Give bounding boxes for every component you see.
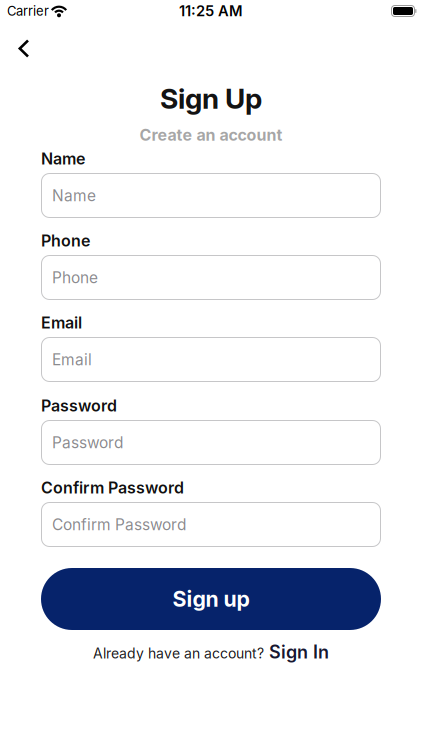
staticText: Name bbox=[52, 186, 96, 205]
staticText: Sign Up bbox=[160, 82, 262, 115]
button[interactable]: Name bbox=[41, 173, 381, 218]
button[interactable]: Password bbox=[41, 420, 381, 465]
staticText: 11:25 AM bbox=[179, 2, 243, 20]
staticText: Sign In bbox=[269, 641, 329, 663]
button[interactable] bbox=[0, 32, 37, 65]
staticText: Phone bbox=[52, 268, 98, 287]
button[interactable]: Sign In bbox=[269, 641, 329, 663]
staticText: Phone bbox=[41, 231, 90, 250]
staticText: Name bbox=[41, 149, 85, 168]
staticText: Email bbox=[52, 350, 92, 369]
button[interactable]: Confirm Password bbox=[41, 502, 381, 547]
staticText: Sign up bbox=[172, 586, 249, 612]
button[interactable]: Phone bbox=[41, 255, 381, 300]
staticText: Password bbox=[52, 433, 123, 452]
staticText: Confirm Password bbox=[41, 478, 184, 497]
button[interactable]: Sign up bbox=[41, 568, 381, 630]
staticText: Email bbox=[41, 313, 82, 332]
staticText: Already have an account? bbox=[93, 645, 264, 662]
staticText: Carrier bbox=[7, 3, 49, 19]
button[interactable]: Email bbox=[41, 337, 381, 382]
staticText: Password bbox=[41, 396, 117, 415]
staticText: Create an account bbox=[139, 125, 282, 145]
staticText: Confirm Password bbox=[52, 515, 186, 534]
